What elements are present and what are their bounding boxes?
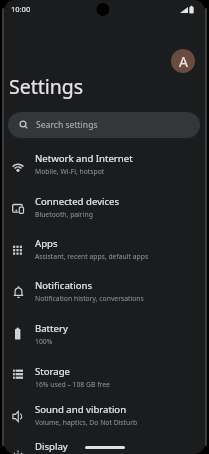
staticText: Notifications xyxy=(35,279,93,292)
staticText: Notification history, conversations xyxy=(35,294,144,303)
button[interactable]: Search settings xyxy=(8,112,200,138)
button[interactable]: Display xyxy=(6,437,202,454)
button[interactable]: Network and Internet xyxy=(6,149,202,189)
button[interactable]: Apps xyxy=(6,234,202,274)
staticText: Volume, haptics, Do Not Disturb xyxy=(35,418,138,427)
staticText: Apps xyxy=(35,237,58,250)
button[interactable]: Connected devices xyxy=(6,192,202,232)
staticText: Display xyxy=(35,440,68,453)
staticText: 100% xyxy=(35,337,53,346)
button[interactable]: Notifications xyxy=(6,276,202,316)
staticText: Assistant, recent apps, default apps xyxy=(35,252,149,261)
staticText: 10:00 xyxy=(11,4,31,14)
button[interactable]: Storage xyxy=(6,362,202,402)
staticText: Search settings xyxy=(36,119,98,131)
staticText: Sound and vibration xyxy=(35,403,127,416)
staticText: Storage xyxy=(35,365,70,378)
staticText: 16% used – 108 GB free xyxy=(35,380,110,389)
button[interactable]: Battery xyxy=(6,319,202,359)
staticText: A xyxy=(179,52,188,71)
staticText: Battery xyxy=(35,322,68,335)
button[interactable]: Sound and vibration xyxy=(6,400,202,440)
staticText: Bluetooth, pairing xyxy=(35,210,93,219)
staticText: Network and Internet xyxy=(35,152,133,165)
button[interactable]: A xyxy=(171,49,195,73)
staticText: Mobile, Wi‑Fi, hotspot xyxy=(35,167,105,176)
staticText: Connected devices xyxy=(35,195,120,208)
staticText: Settings xyxy=(9,73,84,100)
